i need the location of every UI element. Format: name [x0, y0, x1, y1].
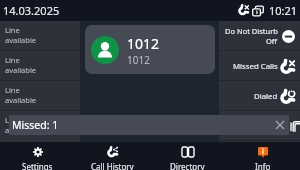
button[interactable]: 1012 — [85, 25, 215, 74]
staticText: available — [5, 65, 37, 75]
button[interactable]: Missed Calls — [219, 51, 300, 81]
staticText: Line — [5, 115, 20, 125]
button[interactable]: Call History — [75, 142, 150, 170]
staticText: 10:21 — [269, 3, 298, 18]
staticText: Line — [5, 25, 20, 35]
staticText: available — [5, 125, 37, 135]
staticText: Settings — [22, 161, 53, 170]
staticText: Missed: 1 — [12, 118, 59, 132]
staticText: Line — [5, 85, 20, 95]
staticText: Call History — [91, 161, 134, 170]
staticText: Line — [5, 55, 20, 65]
button[interactable]: Settings — [0, 142, 75, 170]
button[interactable]: Directory — [150, 142, 225, 170]
button[interactable]: Dialed — [219, 81, 300, 111]
staticText: Missed Calls — [233, 61, 278, 72]
button[interactable]: Close — [272, 117, 288, 133]
staticText: 14.03.2025 — [3, 3, 60, 18]
button[interactable]: Line — [0, 51, 80, 81]
staticText: Directory — [170, 161, 205, 170]
staticText: 1012 — [127, 34, 160, 53]
button[interactable]: Line — [0, 81, 80, 111]
staticText: available — [5, 95, 37, 105]
button[interactable]: Missed: 1 — [9, 115, 289, 135]
staticText: 1012 — [127, 53, 150, 67]
staticText: Off — [266, 36, 278, 46]
staticText: Info — [255, 161, 271, 170]
button[interactable]: Line — [0, 21, 80, 51]
staticText: Do Not Disturb — [225, 26, 278, 36]
button[interactable]: Line — [0, 111, 80, 141]
staticText: Dialed — [254, 91, 278, 102]
button[interactable]: Do Not Disturb — [219, 21, 300, 51]
other: Keypad — [290, 121, 300, 132]
staticText: available — [5, 35, 37, 45]
button[interactable]: Info — [225, 142, 300, 170]
